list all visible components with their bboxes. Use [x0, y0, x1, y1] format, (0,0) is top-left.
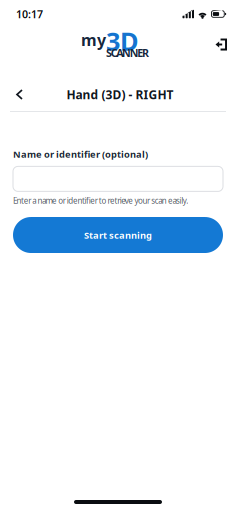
staticText: 3D — [106, 24, 139, 58]
button[interactable]: Back — [7, 81, 32, 108]
staticText: Hand (3D) - RIGHT — [66, 86, 173, 102]
staticText: my — [81, 29, 106, 50]
button[interactable]: Start scanning — [13, 217, 223, 253]
staticText: 10:17 — [16, 7, 43, 21]
staticText: Name or identifier (optional) — [13, 148, 148, 160]
button[interactable]: Log out — [208, 31, 234, 57]
staticText: SCANNER — [106, 46, 149, 60]
staticText: Enter a name or identifier to retrieve y… — [13, 195, 188, 206]
staticText: Start scanning — [84, 229, 152, 241]
